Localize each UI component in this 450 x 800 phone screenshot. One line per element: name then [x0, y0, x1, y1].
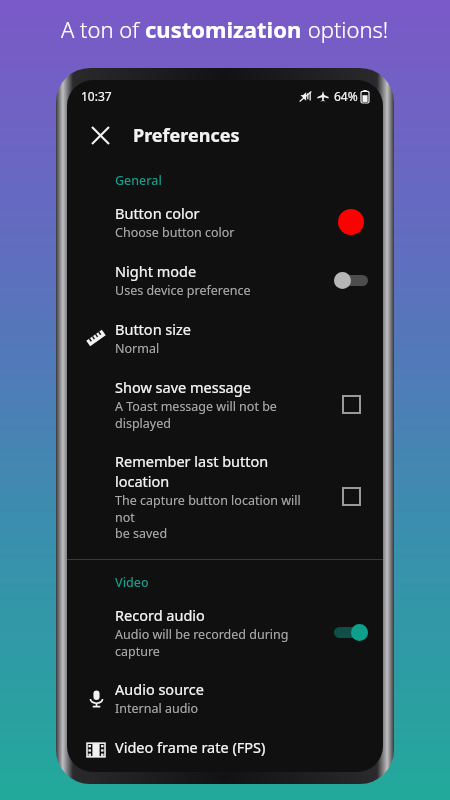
button[interactable]: Remember last button location — [67, 441, 383, 551]
staticText: Show save message — [115, 377, 251, 397]
staticText: Audio source — [115, 679, 204, 699]
button[interactable]: Show save message — [67, 367, 383, 441]
staticText: A Toast message will not be displayed — [115, 398, 277, 431]
staticText: Video — [115, 574, 149, 591]
button[interactable]: Checkbox — [338, 483, 364, 509]
staticText: Uses device preference — [115, 282, 251, 299]
staticText: Button size — [115, 319, 192, 339]
staticText: Record audio — [115, 605, 205, 625]
staticText: 64% — [334, 88, 358, 104]
staticText: Choose button color — [115, 224, 235, 241]
button[interactable]: Record audio toggle — [334, 623, 368, 641]
staticText: Remember last button location — [115, 451, 323, 491]
staticText: Button color — [115, 203, 200, 223]
button[interactable]: Audio source — [67, 669, 383, 727]
button[interactable]: Checkbox — [338, 391, 364, 417]
staticText: Normal — [115, 340, 160, 357]
button[interactable]: Record audio — [67, 595, 383, 669]
button[interactable]: Close — [81, 116, 119, 154]
staticText: options! — [302, 14, 389, 44]
staticText: customization — [145, 14, 302, 44]
button[interactable]: Button color — [338, 209, 364, 235]
staticText: Audio will be recorded during capture — [115, 626, 323, 659]
button[interactable]: Button color — [67, 193, 383, 251]
staticText: Internal audio — [115, 700, 199, 717]
button[interactable]: Night mode toggle — [334, 271, 368, 289]
button[interactable]: Video frame rate (FPS) — [67, 727, 383, 772]
button[interactable]: Button size — [67, 309, 383, 367]
staticText: Night mode — [115, 261, 197, 281]
staticText: A ton of — [61, 14, 145, 44]
staticText: 10:37 — [81, 88, 112, 104]
button[interactable]: Night mode — [67, 251, 383, 309]
staticText: The capture button location will not be … — [115, 492, 323, 541]
staticText: Preferences — [133, 123, 240, 148]
staticText: General — [115, 172, 162, 189]
staticText: Video frame rate (FPS) — [115, 737, 266, 757]
